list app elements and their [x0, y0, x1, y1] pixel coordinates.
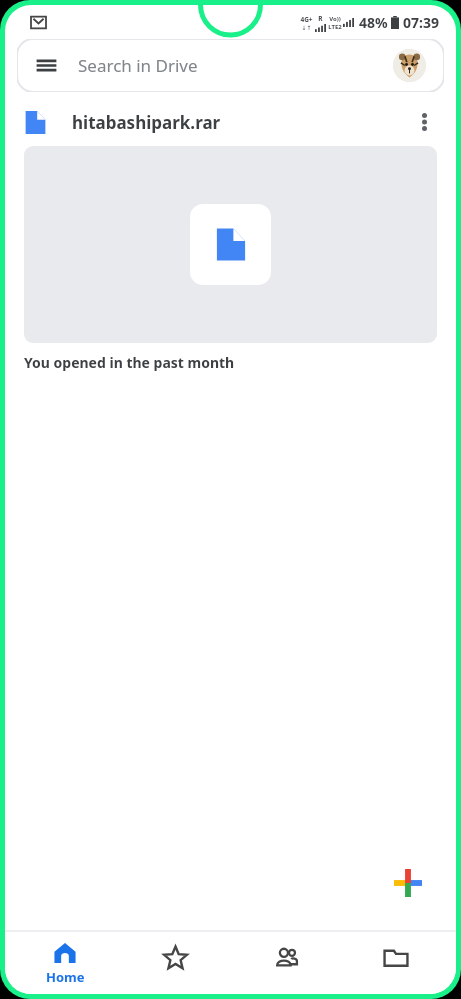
button[interactable]: hitabashipark.rar: [5, 98, 456, 146]
button[interactable]: Menu: [17, 39, 444, 92]
staticText: 07:39: [403, 13, 439, 32]
other: Menu: [35, 54, 58, 77]
staticText: 4G+: [300, 15, 313, 24]
staticText: R: [318, 14, 323, 23]
button[interactable]: Create new: [377, 852, 439, 914]
button[interactable]: More options: [404, 102, 444, 142]
staticText: Home: [46, 968, 85, 986]
button[interactable]: Shared: [236, 932, 336, 994]
button[interactable]: Starred: [125, 932, 225, 994]
staticText: ↓↑: [301, 24, 312, 31]
staticText: 48%: [359, 13, 388, 32]
staticText: Vo)): [329, 15, 341, 23]
staticText: hitabashipark.rar: [72, 111, 221, 134]
staticText: Search in Drive: [78, 54, 198, 77]
staticText: LTE2: [328, 23, 342, 31]
button[interactable]: [24, 146, 437, 343]
button[interactable]: Account: [393, 49, 426, 82]
button[interactable]: Files: [346, 932, 446, 994]
staticText: You opened in the past month: [24, 353, 235, 372]
button[interactable]: Home: [15, 932, 115, 994]
